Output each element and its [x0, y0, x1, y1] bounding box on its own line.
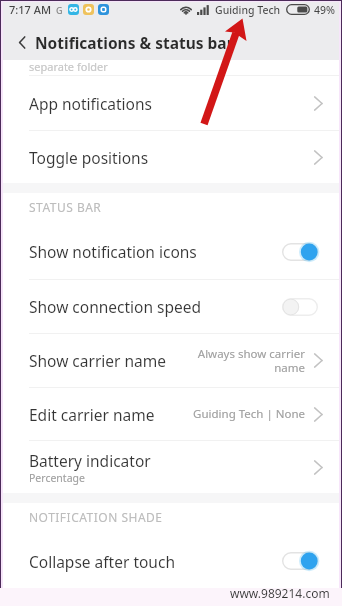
button[interactable]: Toggle positions [3, 131, 339, 183]
staticText: G [56, 4, 63, 16]
staticText: Show carrier name [29, 350, 166, 371]
staticText: STATUS BAR [29, 199, 102, 215]
button[interactable]: Show notification icons [3, 224, 339, 279]
button[interactable]: Toggle off [282, 298, 318, 316]
staticText: Guiding Tech [215, 3, 281, 17]
staticText: Show notification icons [29, 241, 282, 262]
staticText: NOTIFICATION SHADE [29, 509, 163, 525]
staticText: 49% [314, 3, 335, 17]
staticText: 7:17 AM [9, 2, 52, 17]
staticText: Show connection speed [29, 296, 282, 317]
button[interactable]: Toggle on [282, 243, 318, 261]
button[interactable]: Battery indicator [3, 441, 339, 493]
staticText: Notifications & status bar [35, 32, 234, 53]
staticText: Always show carrier name [197, 346, 305, 375]
staticText: www.989214.com [230, 585, 330, 601]
button[interactable]: Edit carrier name [3, 388, 339, 440]
button[interactable]: Show carrier name [3, 334, 339, 387]
staticText: Collapse after touch [29, 551, 282, 572]
staticText: separate folder [29, 59, 108, 74]
staticText: Battery indicator [29, 450, 151, 471]
staticText: App notifications [29, 93, 152, 114]
button[interactable]: Collapse after touch [3, 534, 339, 588]
staticText: Toggle positions [29, 147, 149, 168]
button[interactable]: Back [9, 29, 35, 55]
button[interactable]: Toggle on [282, 552, 318, 570]
button[interactable]: App notifications [3, 76, 339, 130]
staticText: Edit carrier name [29, 404, 155, 425]
button[interactable]: Show connection speed [3, 280, 339, 333]
staticText: Guiding Tech | None [193, 406, 305, 422]
staticText: Percentage [29, 471, 85, 485]
